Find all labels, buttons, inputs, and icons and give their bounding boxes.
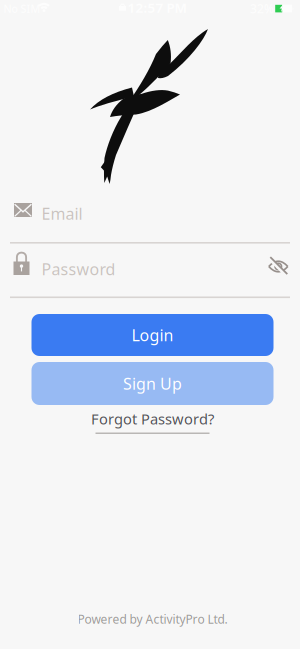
staticText: Sign Up [123,373,182,394]
staticText: Forgot Password? [91,409,214,429]
staticText: Password [41,258,115,280]
button[interactable]: Email [9,199,291,243]
staticText: Powered by ActivityPro Ltd. [77,611,227,627]
button[interactable]: Login [31,314,273,356]
button[interactable]: Forgot Password? [91,409,214,434]
staticText: Email [41,203,82,224]
button[interactable]: Sign Up [31,362,273,405]
button[interactable]: Show password [266,254,290,278]
button[interactable]: Password [9,253,291,297]
staticText: Login [131,324,173,346]
